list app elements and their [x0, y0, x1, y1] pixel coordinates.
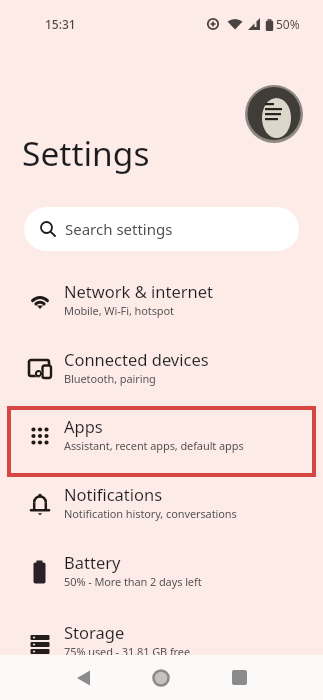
staticText: Search settings — [65, 219, 173, 239]
staticText: Mobile, Wi-Fi, hotspot — [64, 303, 174, 318]
button[interactable] — [122, 655, 200, 700]
staticText: 50% — [276, 16, 300, 32]
staticText: 15:31 — [45, 16, 76, 32]
button[interactable] — [45, 655, 122, 700]
button[interactable]: Search settings — [24, 207, 299, 251]
staticText: Bluetooth, pairing — [64, 371, 156, 386]
button[interactable]: Connected devices — [0, 335, 323, 402]
button[interactable]: Battery — [0, 538, 323, 605]
staticText: Apps — [64, 415, 103, 437]
button[interactable] — [200, 655, 278, 700]
staticText: 50% - More than 2 days left — [64, 574, 202, 589]
staticText: Settings — [22, 130, 150, 176]
staticText: Network & internet — [64, 280, 214, 302]
staticText: Battery — [64, 551, 121, 573]
button[interactable]: Apps — [0, 402, 323, 469]
staticText: Assistant, recent apps, default apps — [64, 438, 244, 453]
staticText: Notifications — [64, 483, 163, 505]
staticText: Storage — [64, 621, 125, 643]
staticText: Notification history, conversations — [64, 506, 237, 521]
staticText: 75% used - 31.81 GB free — [64, 644, 190, 659]
staticText: Connected devices — [64, 348, 209, 370]
button[interactable]: Network & internet — [0, 267, 323, 334]
button[interactable]: Storage — [0, 608, 323, 675]
button[interactable]: Notifications — [0, 470, 323, 537]
button[interactable] — [245, 85, 303, 143]
